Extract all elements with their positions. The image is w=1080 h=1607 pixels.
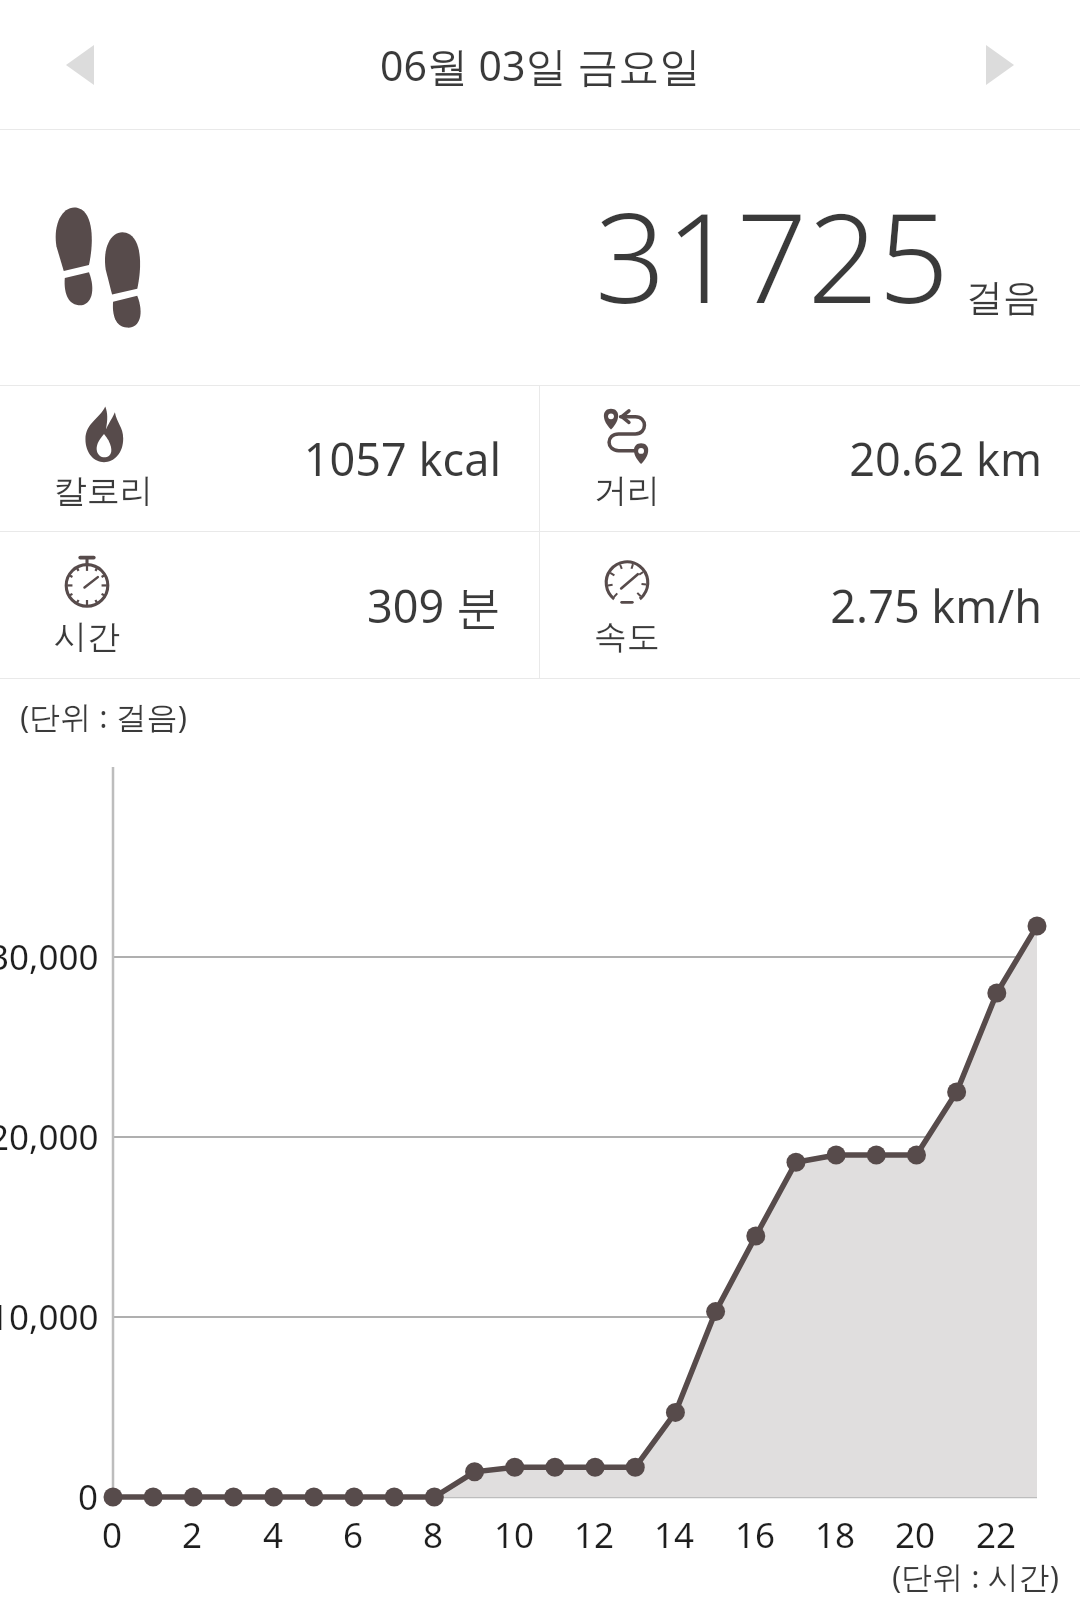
button[interactable]: 속도 (540, 532, 1080, 678)
staticText: 14 (654, 1511, 695, 1559)
staticText: 22 (976, 1511, 1017, 1559)
staticText: 30,000 (0, 933, 99, 981)
staticText: 시간 (54, 616, 120, 658)
staticText: 1057 kcal (130, 428, 501, 489)
staticText: 4 (263, 1511, 284, 1559)
staticText: 18 (815, 1511, 856, 1559)
staticText: 칼로리 (54, 470, 153, 512)
staticText: 06월 03일 금요일 (380, 37, 701, 93)
button[interactable]: 31725 (0, 130, 1080, 385)
staticText: 8 (423, 1511, 444, 1559)
staticText: 309 분 (130, 575, 501, 636)
staticText: 10,000 (0, 1293, 99, 1341)
staticText: 6 (343, 1511, 364, 1559)
staticText: (단위 : 걸음) (20, 695, 188, 737)
staticText: 0 (78, 1473, 99, 1521)
staticText: 10 (494, 1511, 535, 1559)
staticText: 12 (574, 1511, 615, 1559)
button[interactable]: 시간 (0, 532, 539, 678)
button[interactable]: Next day (920, 0, 1080, 129)
staticText: 31725 (595, 170, 950, 339)
button[interactable]: Previous day (0, 0, 160, 129)
staticText: 거리 (594, 470, 660, 512)
staticText: 20.62 km (670, 428, 1042, 489)
staticText: 16 (735, 1511, 776, 1559)
staticText: 20,000 (0, 1113, 99, 1161)
staticText: (단위 : 시간) (892, 1555, 1060, 1597)
staticText: 걸음 (966, 274, 1040, 321)
button[interactable]: 거리 (540, 386, 1080, 531)
button[interactable]: 칼로리 (0, 386, 539, 531)
staticText: 속도 (594, 616, 660, 658)
staticText: 20 (895, 1511, 936, 1559)
staticText: 2 (182, 1511, 203, 1559)
staticText: 0 (102, 1511, 123, 1559)
staticText: 2.75 km/h (670, 575, 1042, 636)
